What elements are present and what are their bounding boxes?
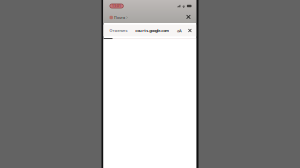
button[interactable]: Отменить <box>108 25 128 36</box>
button[interactable]: Close <box>184 12 193 22</box>
button[interactable]: Page settings <box>176 25 183 36</box>
button[interactable]: Close tab <box>187 26 193 35</box>
staticText: аA <box>177 28 182 33</box>
staticText: 13:01 <box>112 4 121 8</box>
staticText: courts.google.com <box>135 28 169 33</box>
button[interactable]: Почта <box>108 13 129 22</box>
staticText: Почта <box>114 15 125 20</box>
staticText: Отменить <box>109 28 127 33</box>
